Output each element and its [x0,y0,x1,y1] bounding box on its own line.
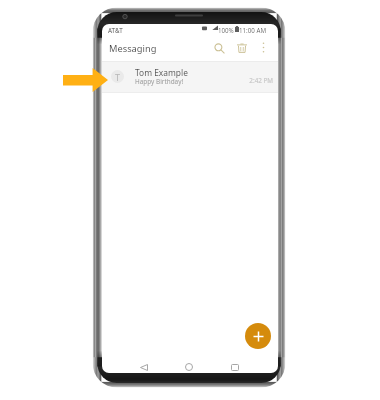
staticText: 2:42 PM [249,76,273,85]
staticText: Messaging [109,42,157,55]
button[interactable]: T [102,61,278,93]
button[interactable]: New message [245,323,271,349]
button[interactable]: Home [177,358,201,373]
button[interactable]: Recents [223,358,247,373]
button[interactable]: More options [255,39,271,55]
button[interactable]: Delete [233,39,251,57]
staticText: Happy Birthday! [135,77,184,86]
staticText: AT&T [108,26,123,34]
button[interactable]: Back [132,358,156,373]
staticText: 11:00 AM [239,26,266,34]
staticText: 100% [218,26,234,34]
button[interactable]: Search [210,39,228,57]
staticText: Tom Example [135,67,188,78]
staticText: T [115,71,121,83]
